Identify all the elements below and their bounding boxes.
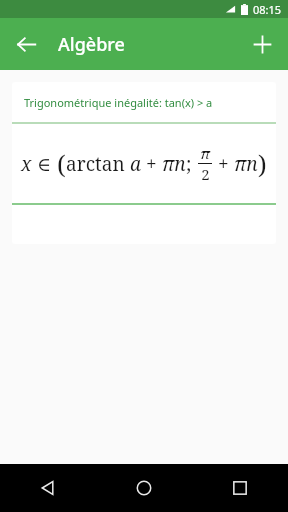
button[interactable]: Add [242, 24, 282, 64]
staticText: ) [258, 147, 267, 181]
staticText: Algèbre [58, 32, 125, 57]
button[interactable]: Back [0, 464, 96, 512]
button[interactable]: Recent apps [192, 464, 288, 512]
staticText: ; [186, 151, 197, 177]
button[interactable]: Trigonométrique inégalité: tan(x) > a [12, 82, 276, 244]
staticText: + [213, 151, 234, 177]
staticText: arctan [66, 151, 125, 177]
staticText: π [200, 143, 210, 163]
button[interactable]: Home [96, 464, 192, 512]
staticText: πn [162, 151, 186, 177]
staticText: ( [57, 147, 66, 181]
staticText: 2 [201, 164, 210, 184]
staticText: a [125, 151, 141, 177]
staticText: x [21, 151, 37, 177]
staticText: πn [234, 151, 258, 177]
staticText: ∈ [37, 151, 57, 177]
staticText: + [141, 151, 162, 177]
staticText: 08:15 [253, 2, 282, 17]
staticText: Trigonométrique inégalité: tan(x) > a [24, 95, 213, 110]
button[interactable]: Back [6, 24, 46, 64]
